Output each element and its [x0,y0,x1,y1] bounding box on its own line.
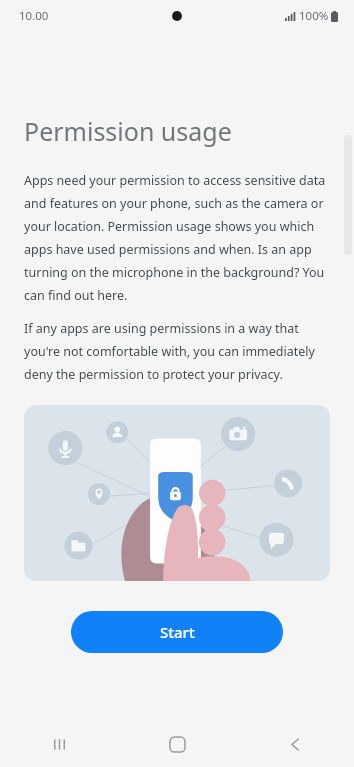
staticText: Apps need your permission to access sens… [24,172,332,304]
button[interactable]: Start [71,611,283,653]
staticText: 10.00 [19,8,49,24]
button[interactable]: Recents [0,721,118,767]
staticText: Permission usage [24,114,232,148]
staticText: 100% [299,8,329,24]
button[interactable]: Back [236,721,354,767]
button[interactable]: Home [118,721,236,767]
staticText: If any apps are using permissions in a w… [24,320,332,383]
staticText: Start [160,622,195,642]
